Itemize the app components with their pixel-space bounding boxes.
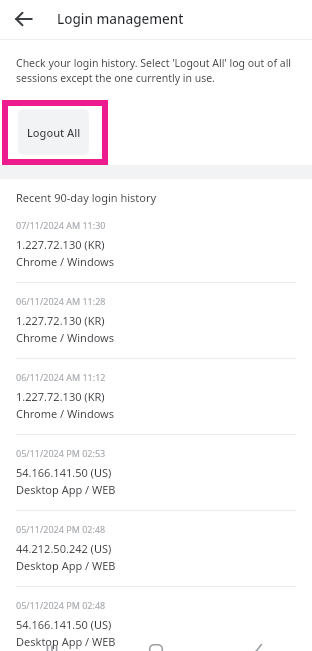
staticText: Chrome / Windows <box>16 254 115 269</box>
staticText: 1.227.72.130 (KR) <box>16 237 105 252</box>
button[interactable]: Logout All <box>18 109 89 155</box>
button[interactable]: 06/11/2024 AM 11:28 <box>0 295 312 358</box>
staticText: 05/11/2024 PM 02:48 <box>16 523 106 535</box>
staticText: 06/11/2024 AM 11:12 <box>16 371 106 383</box>
staticText: Recent 90-day login history <box>16 190 157 205</box>
button[interactable]: 05/11/2024 PM 02:48 <box>0 599 312 651</box>
button[interactable]: 05/11/2024 PM 02:48 <box>0 523 312 586</box>
staticText: Chrome / Windows <box>16 406 115 421</box>
staticText: 05/11/2024 PM 02:48 <box>16 599 106 611</box>
staticText: Desktop App / WEB <box>16 634 116 649</box>
button[interactable]: 07/11/2024 AM 11:30 <box>0 219 312 282</box>
staticText: 54.166.141.50 (US) <box>16 617 112 632</box>
staticText: 54.166.141.50 (US) <box>16 465 112 480</box>
staticText: 1.227.72.130 (KR) <box>16 313 105 328</box>
staticText: 06/11/2024 AM 11:28 <box>16 295 106 307</box>
button[interactable]: 05/11/2024 PM 02:53 <box>0 447 312 510</box>
button[interactable]: 06/11/2024 AM 11:12 <box>0 371 312 434</box>
staticText: 05/11/2024 PM 02:53 <box>16 447 106 459</box>
staticText: Check your login history. Select 'Logout… <box>16 56 298 85</box>
staticText: Desktop App / WEB <box>16 482 116 497</box>
staticText: 44.212.50.242 (US) <box>16 541 112 556</box>
staticText: 1.227.72.130 (KR) <box>16 389 105 404</box>
staticText: Logout All <box>27 125 81 140</box>
staticText: 07/11/2024 AM 11:30 <box>16 219 106 231</box>
staticText: Desktop App / WEB <box>16 558 116 573</box>
staticText: Login management <box>57 10 184 28</box>
button[interactable]: Back <box>8 3 40 35</box>
staticText: Chrome / Windows <box>16 330 115 345</box>
